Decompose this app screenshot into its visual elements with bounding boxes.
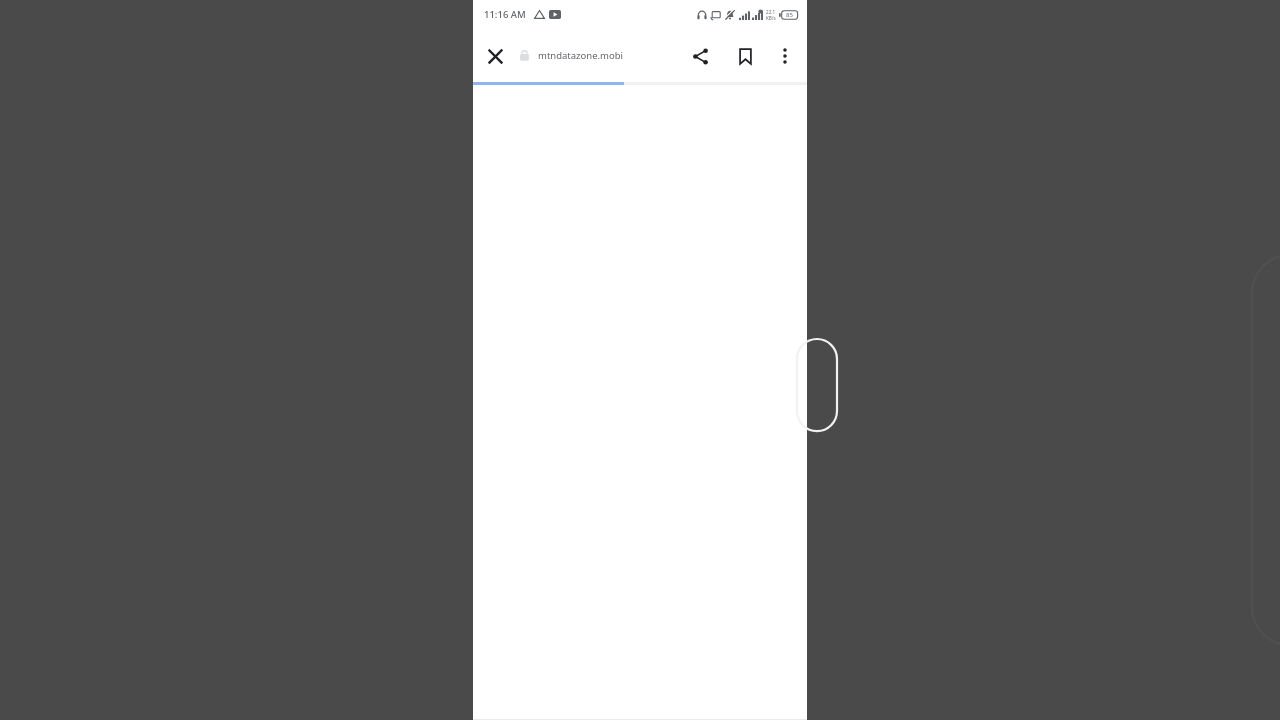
staticText: mtndatazone.mobi: [538, 49, 624, 62]
staticText: 11:16 AM: [484, 8, 526, 21]
button[interactable]: Close tab: [482, 43, 508, 69]
button[interactable]: mtndatazone.mobi: [519, 29, 685, 82]
staticText: 22.1: [766, 9, 776, 15]
staticText: KB/s: [766, 15, 776, 21]
staticText: 85: [786, 11, 793, 19]
button[interactable]: Bookmark: [730, 41, 760, 71]
button[interactable]: Share: [685, 41, 715, 71]
button[interactable]: More options: [770, 41, 800, 71]
